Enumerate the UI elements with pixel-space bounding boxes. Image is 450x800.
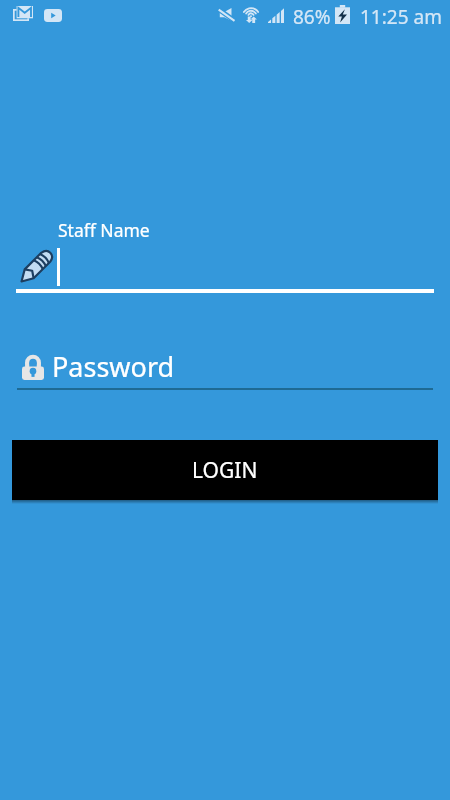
- staticText: 86%: [293, 4, 331, 30]
- staticText: LOGIN: [192, 456, 258, 485]
- button[interactable]: Password input field: [14, 342, 436, 392]
- staticText: 11:25 am: [360, 4, 442, 30]
- button[interactable]: Staff Name input field: [14, 212, 436, 294]
- staticText: Staff Name: [58, 218, 150, 242]
- button[interactable]: LOGIN: [12, 440, 438, 500]
- staticText: Password: [52, 348, 175, 385]
